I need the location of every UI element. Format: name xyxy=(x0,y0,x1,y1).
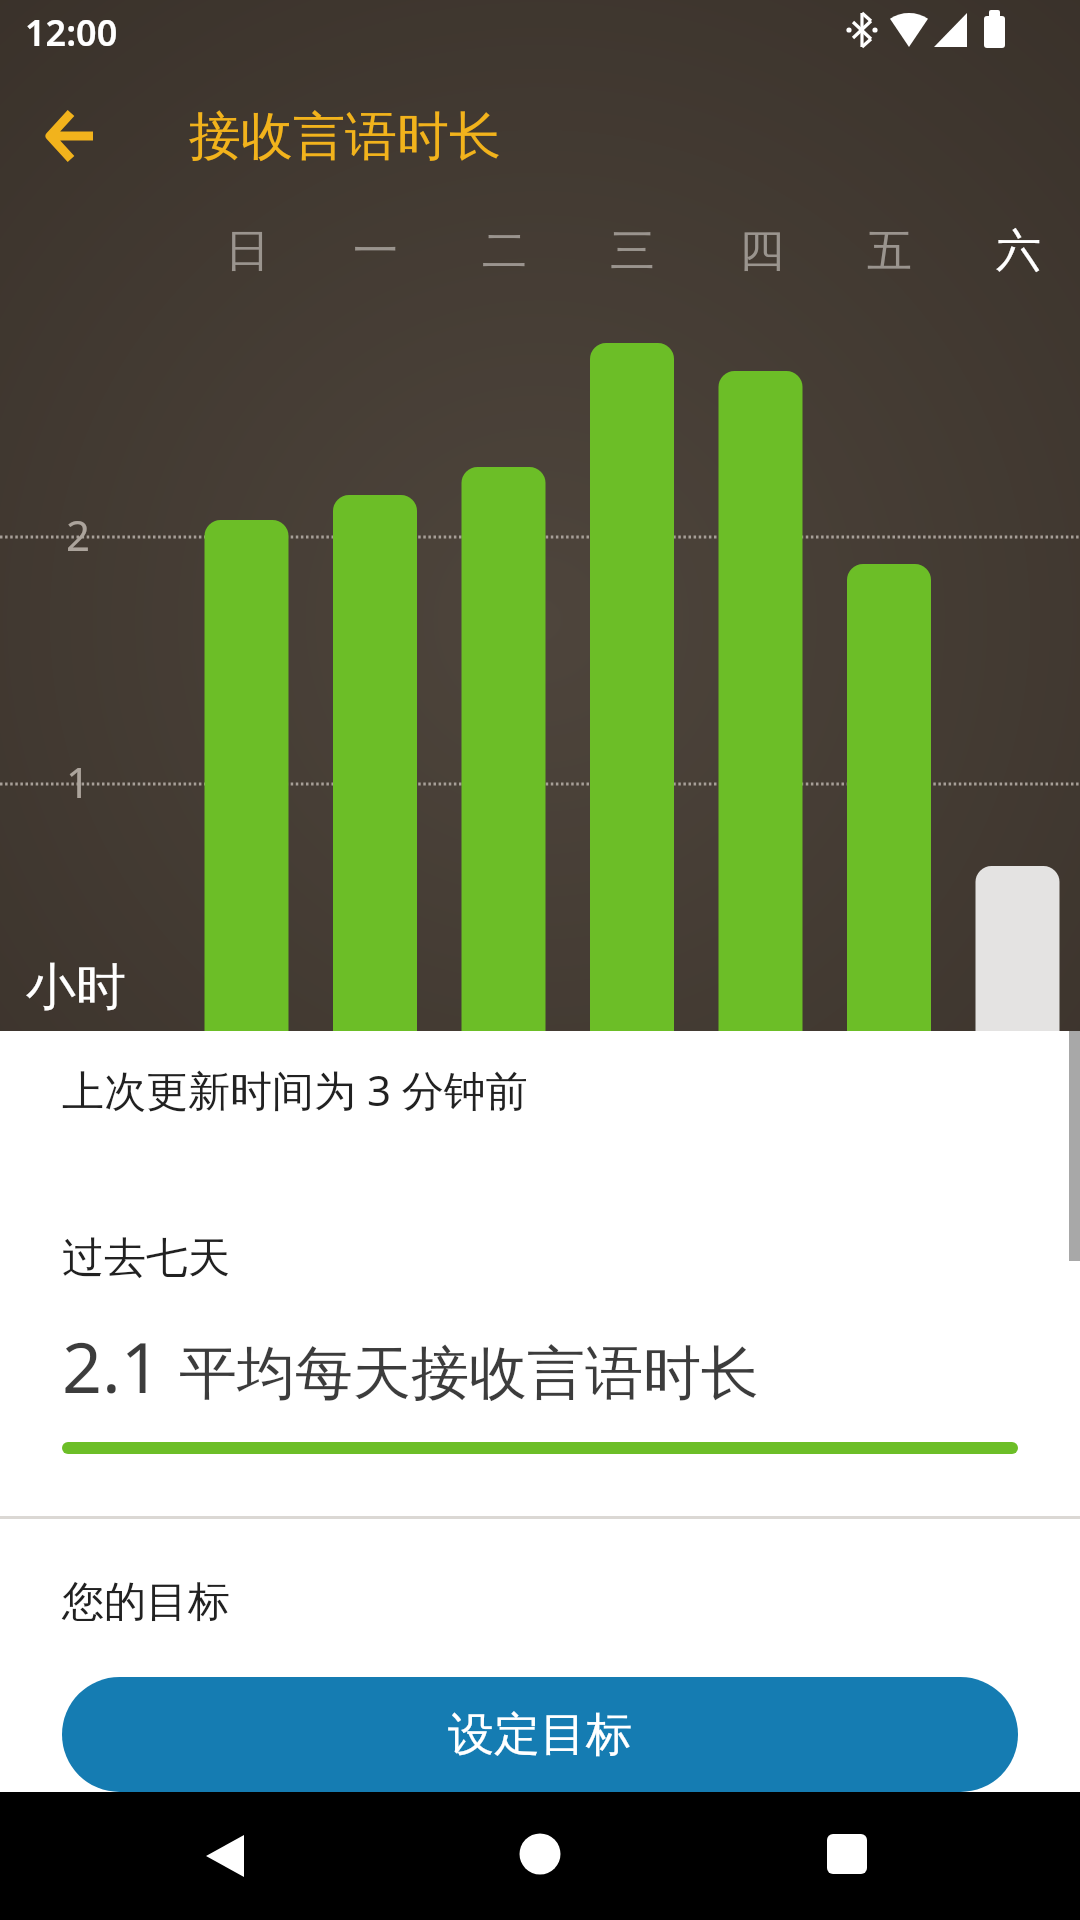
staticText: 2.1 平均每天接收言语时长 xyxy=(62,1318,760,1413)
staticText: 12:00 xyxy=(25,8,118,57)
staticText: 2 xyxy=(66,506,91,563)
staticText: 接收言语时长 xyxy=(189,104,501,170)
staticText: 五 xyxy=(867,223,912,280)
button[interactable]: 设定目标 xyxy=(62,1677,1018,1792)
staticText: 上次更新时间为 3 分钟前 xyxy=(62,1061,528,1118)
button[interactable] xyxy=(800,1806,900,1906)
staticText: 四 xyxy=(739,223,784,280)
staticText: 过去七天 xyxy=(62,1232,230,1285)
staticText: 1 xyxy=(66,753,91,810)
staticText: 一 xyxy=(353,223,398,280)
staticText: 三 xyxy=(610,223,655,280)
staticText: 小时 xyxy=(26,956,126,1019)
staticText: 您的目标 xyxy=(62,1576,230,1629)
staticText: 二 xyxy=(482,223,527,280)
button[interactable] xyxy=(490,1806,590,1906)
staticText: 六 xyxy=(996,223,1041,280)
staticText: 设定目标 xyxy=(448,1706,632,1764)
button[interactable] xyxy=(40,105,104,169)
staticText: 日 xyxy=(225,223,270,280)
button[interactable] xyxy=(178,1806,278,1906)
